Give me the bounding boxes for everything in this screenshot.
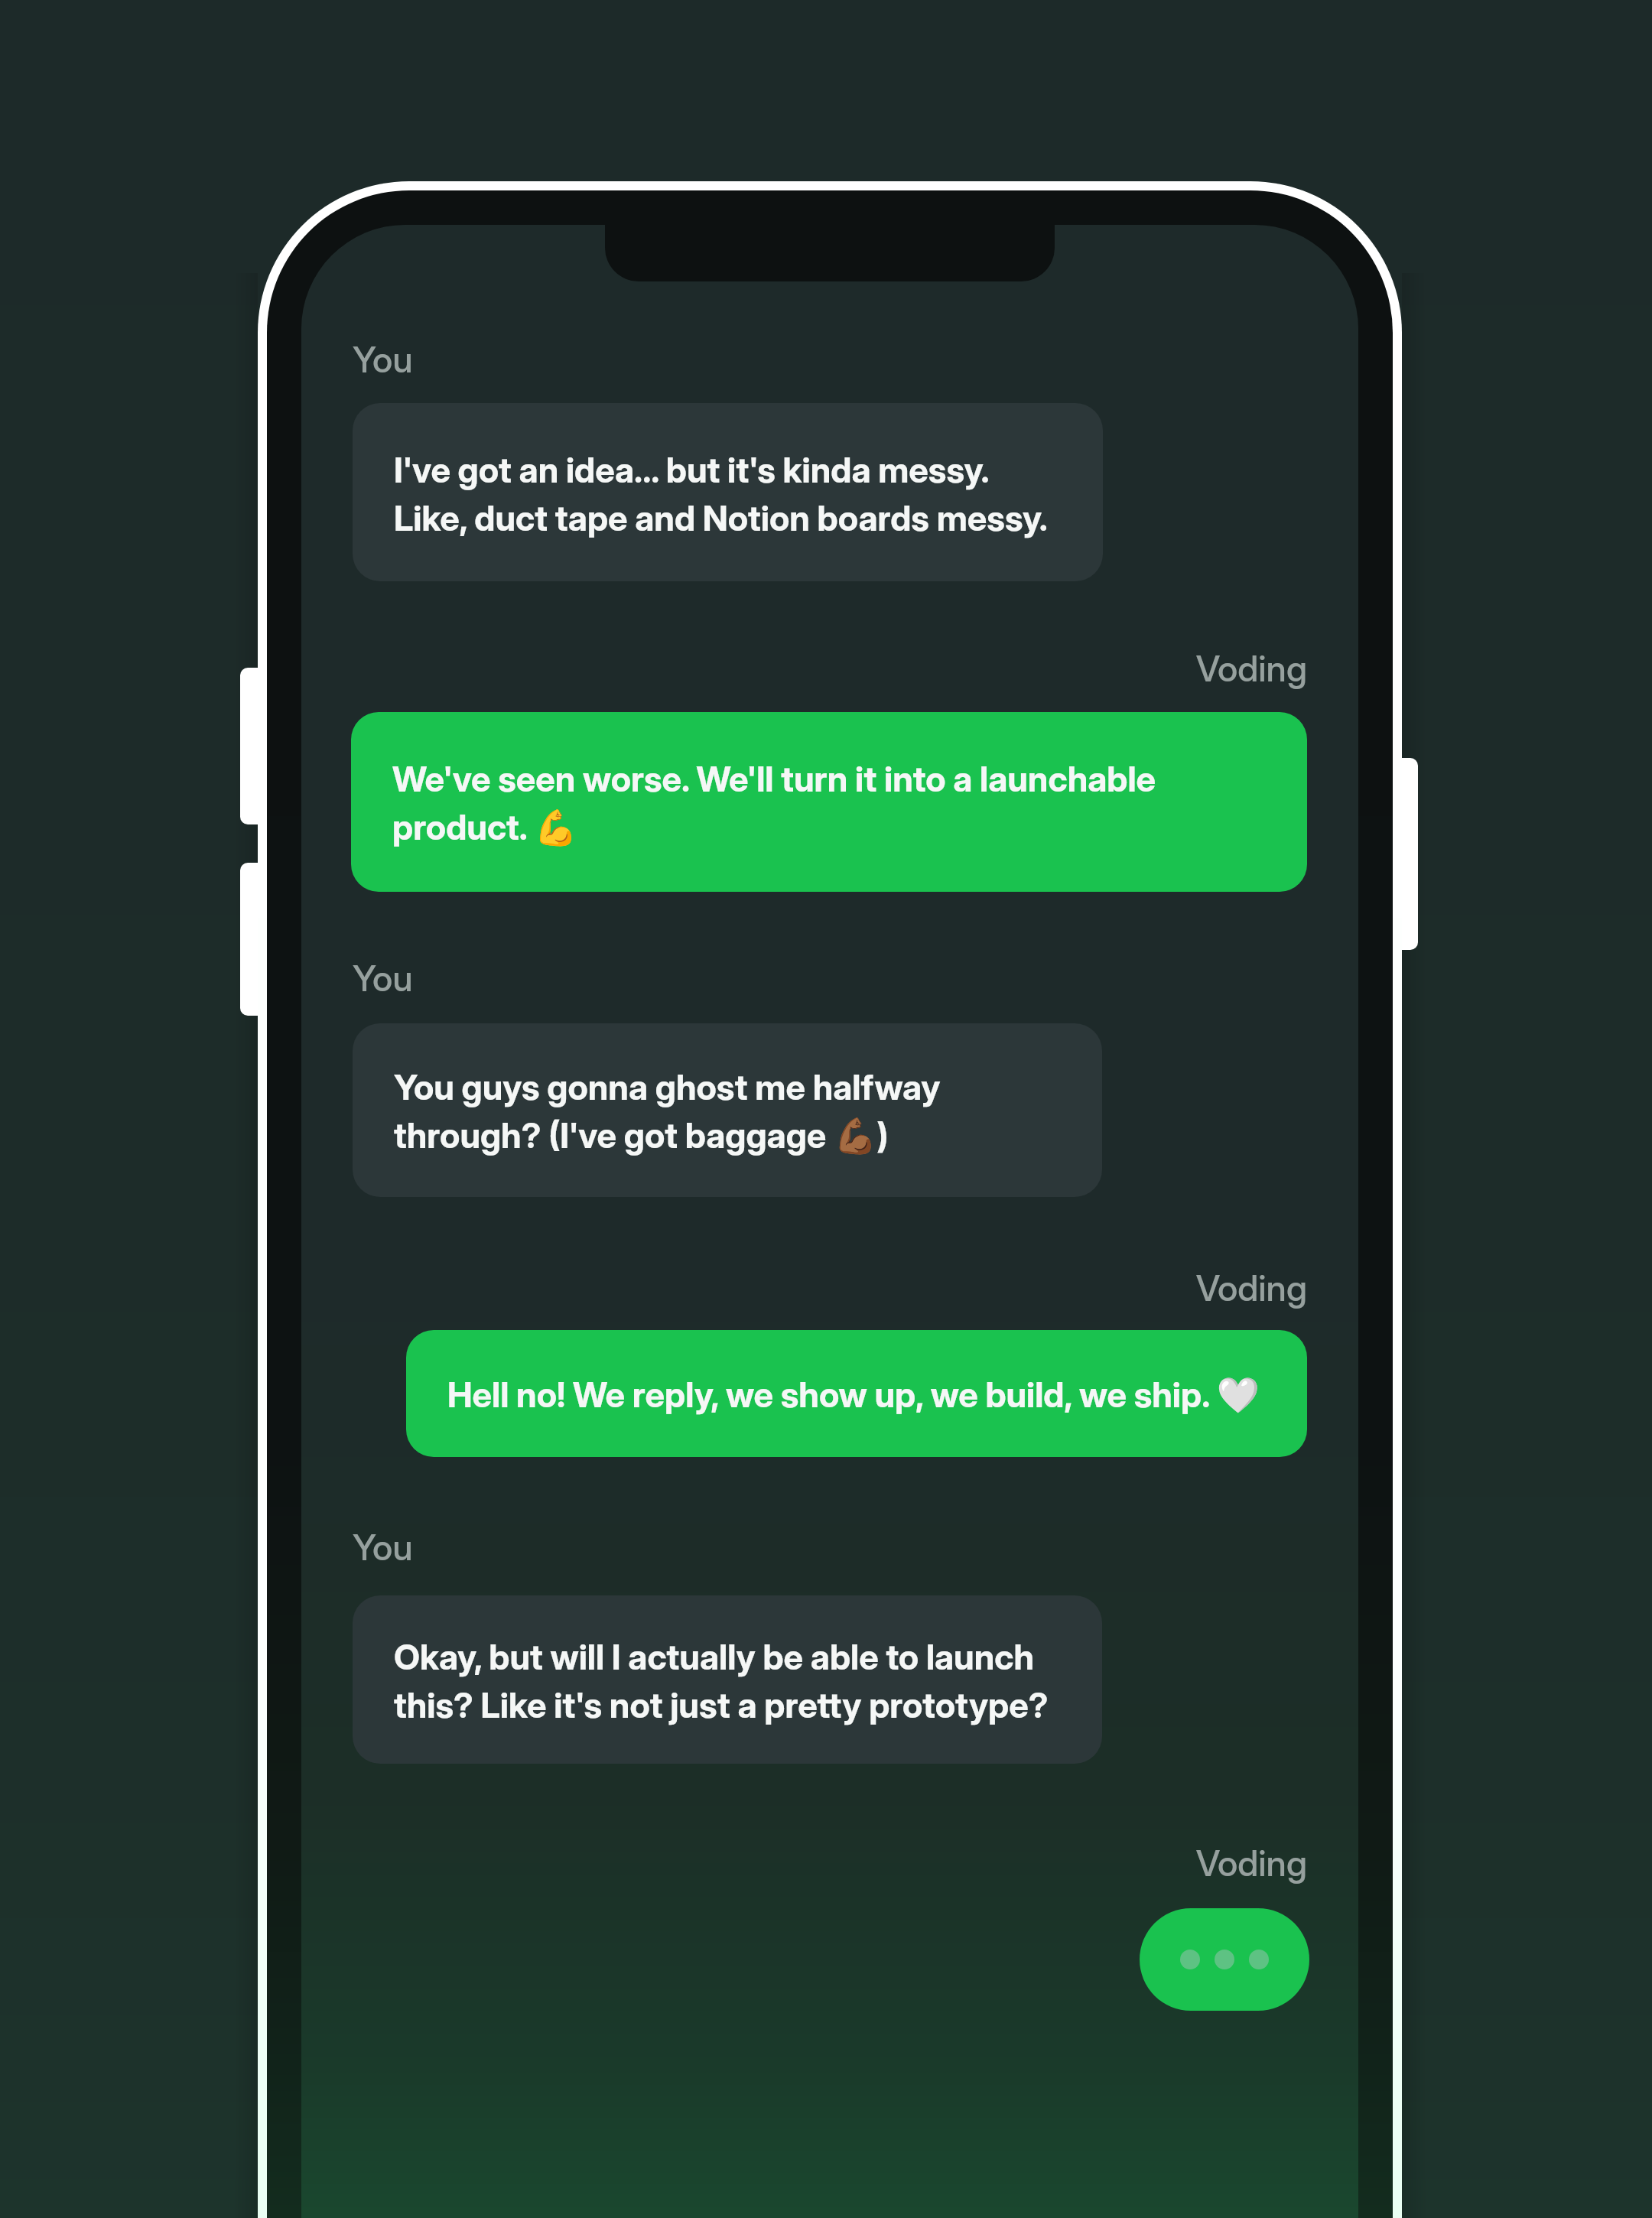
button[interactable]: Okay, but will I actually be able to lau…	[353, 1595, 1102, 1764]
button[interactable]: You guys gonna ghost me halfway	[353, 1023, 1102, 1197]
staticText: You guys gonna ghost me halfway	[394, 1062, 941, 1110]
button[interactable]: Volume down	[240, 863, 271, 1016]
button[interactable]: I've got an idea... but it's kinda messy…	[353, 403, 1103, 581]
button[interactable]: Voding	[353, 1266, 1307, 1309]
button[interactable]: Voding is typing	[1140, 1908, 1309, 2011]
staticText: You	[353, 956, 1307, 1000]
staticText: Voding	[353, 646, 1307, 690]
button[interactable]: We've seen worse. We'll turn it into a l…	[351, 712, 1307, 892]
staticText: Voding	[353, 1266, 1307, 1309]
button[interactable]: Power	[1392, 758, 1418, 950]
button[interactable]: You	[353, 1525, 1307, 1569]
button[interactable]: You	[353, 956, 1307, 1000]
button[interactable]: Hell no! We reply, we show up, we build,…	[406, 1330, 1307, 1457]
staticText: We've seen worse. We'll turn it into a l…	[392, 753, 1156, 802]
staticText: Okay, but will I actually be able to lau…	[394, 1631, 1035, 1680]
button[interactable]: You	[353, 337, 1307, 381]
staticText: Hell no! We reply, we show up, we build,…	[447, 1369, 1260, 1418]
staticText: Like, duct tape and Notion boards messy.	[394, 493, 1048, 541]
staticText: I've got an idea... but it's kinda messy…	[394, 444, 990, 493]
staticText: this? Like it's not just a pretty protot…	[394, 1680, 1049, 1728]
button[interactable]: Voding	[353, 646, 1307, 690]
staticText: You	[353, 1525, 1307, 1569]
staticText: product. 💪	[392, 802, 577, 850]
button[interactable]: Volume up	[240, 668, 271, 824]
button[interactable]: Voding	[353, 1841, 1307, 1885]
staticText: Voding	[353, 1841, 1307, 1885]
staticText: through? (I've got baggage 💪🏾)	[394, 1110, 889, 1159]
staticText: You	[353, 337, 1307, 381]
